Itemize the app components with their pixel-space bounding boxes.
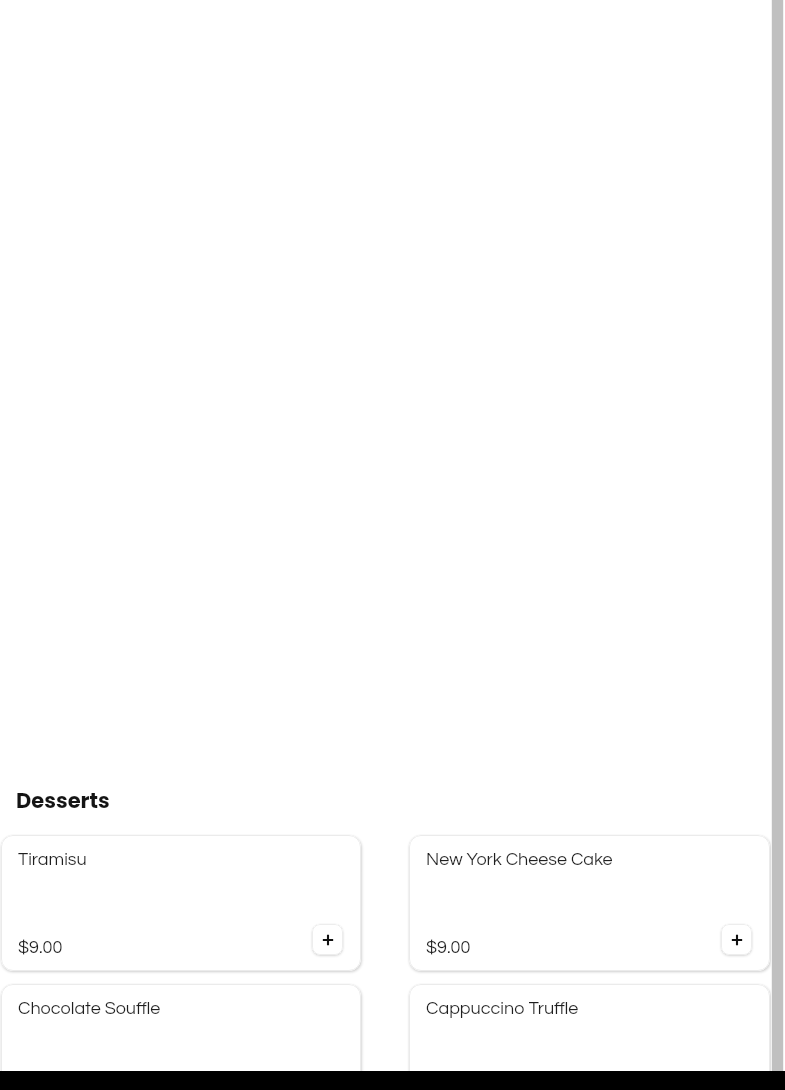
staticText: Chocolate Souffle bbox=[18, 999, 161, 1018]
button[interactable]: Cappuccino Truffle bbox=[409, 984, 770, 1090]
staticText: $9.00 bbox=[18, 938, 63, 957]
button[interactable]: New York Cheese Cake bbox=[409, 835, 770, 971]
staticText: Desserts bbox=[16, 786, 110, 815]
staticText: Tiramisu bbox=[18, 850, 87, 869]
staticText: $9.00 bbox=[426, 938, 471, 957]
button[interactable]: Chocolate Souffle bbox=[1, 984, 361, 1090]
button[interactable]: Tiramisu bbox=[1, 835, 361, 971]
button[interactable]: Add New York Cheese Cake to order bbox=[721, 924, 752, 955]
button[interactable]: Add Tiramisu to order bbox=[312, 924, 343, 955]
staticText: New York Cheese Cake bbox=[426, 850, 613, 869]
staticText: Cappuccino Truffle bbox=[426, 999, 579, 1018]
